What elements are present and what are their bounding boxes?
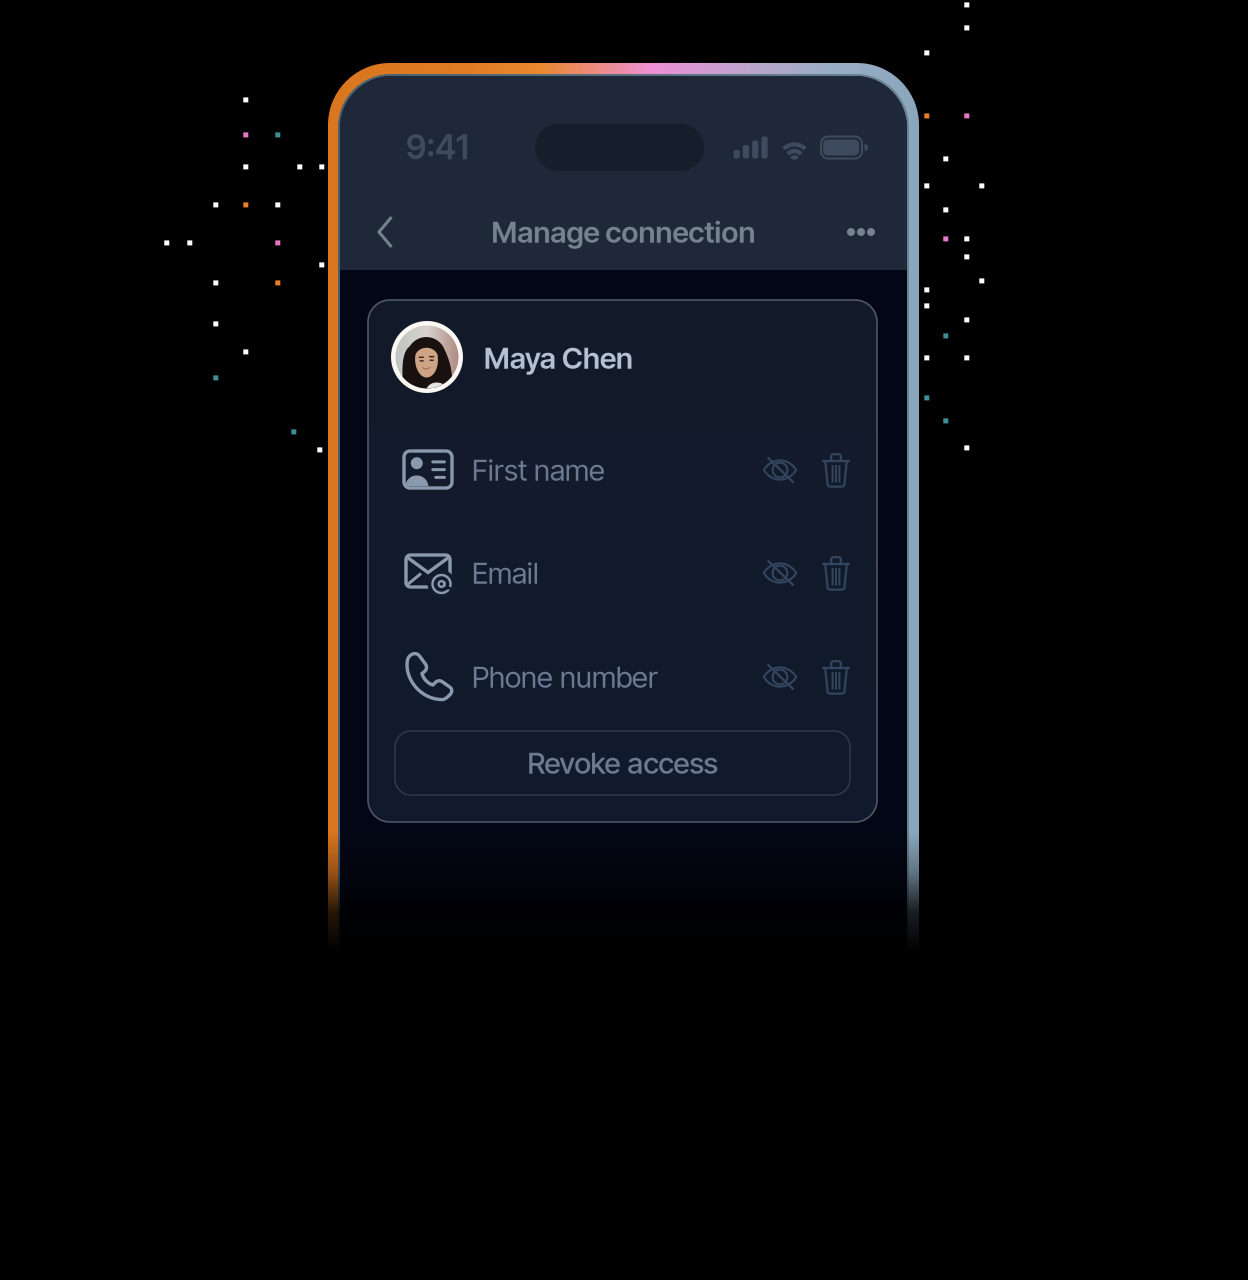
staticText: Manage connection	[491, 214, 755, 250]
button[interactable]: Back	[358, 194, 414, 270]
button[interactable]: Revoke access	[395, 731, 850, 795]
button[interactable]: Hide Email	[752, 545, 808, 601]
button[interactable]: Delete Email	[808, 545, 864, 601]
staticText: Maya Chen	[484, 340, 633, 376]
button[interactable]: Delete Phone number	[808, 649, 864, 705]
staticText: Phone number	[472, 659, 658, 695]
button[interactable]: More options	[833, 194, 889, 270]
button[interactable]: Delete First name	[808, 442, 864, 498]
button[interactable]: Hide First name	[752, 442, 808, 498]
staticText: Email	[472, 555, 539, 591]
staticText: 9:41	[406, 127, 469, 167]
button[interactable]: Hide Phone number	[752, 649, 808, 705]
staticText: First name	[472, 452, 605, 488]
staticText: Revoke access	[527, 745, 717, 781]
